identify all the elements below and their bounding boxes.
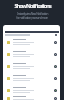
button[interactable] <box>3 36 60 48</box>
button[interactable] <box>3 84 60 96</box>
staticText: Instantly view New Notification <box>17 12 48 16</box>
button[interactable] <box>3 48 60 60</box>
button[interactable] <box>3 96 60 100</box>
staticText: Show Notifications <box>14 2 51 10</box>
button[interactable] <box>3 60 60 72</box>
button[interactable] <box>3 72 60 84</box>
staticText: for notification, news and more <box>16 16 48 20</box>
